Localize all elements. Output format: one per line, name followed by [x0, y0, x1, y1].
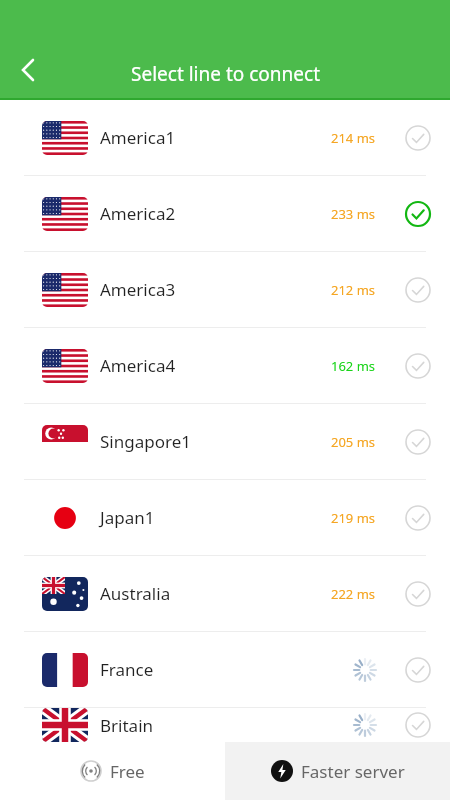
- staticText: America2: [100, 202, 331, 225]
- button[interactable]: Select Japan1: [398, 498, 438, 538]
- button[interactable]: America4: [0, 328, 450, 403]
- staticText: 162 ms: [331, 357, 376, 375]
- button[interactable]: Faster server: [225, 742, 450, 800]
- button[interactable]: America1: [0, 100, 450, 175]
- button[interactable]: Back: [0, 44, 56, 100]
- button[interactable]: Britain: [0, 708, 450, 742]
- button[interactable]: Select Britain: [398, 708, 438, 742]
- staticText: Japan1: [100, 506, 331, 529]
- staticText: 219 ms: [331, 509, 376, 527]
- staticText: Select line to connect: [131, 61, 320, 87]
- staticText: Britain: [100, 714, 354, 737]
- button[interactable]: Free: [0, 742, 225, 800]
- staticText: Faster server: [301, 760, 405, 783]
- button[interactable]: France: [0, 632, 450, 707]
- button[interactable]: Select America4: [398, 346, 438, 386]
- staticText: Singapore1: [100, 430, 331, 453]
- button[interactable]: Select France: [398, 650, 438, 690]
- button[interactable]: Select America3: [398, 270, 438, 310]
- staticText: America1: [100, 126, 331, 149]
- staticText: America3: [100, 278, 331, 301]
- staticText: 212 ms: [331, 281, 376, 299]
- button[interactable]: Singapore1: [0, 404, 450, 479]
- button[interactable]: Selected: [398, 194, 438, 234]
- staticText: France: [100, 658, 354, 681]
- button[interactable]: America3: [0, 252, 450, 327]
- button[interactable]: Australia: [0, 556, 450, 631]
- staticText: 214 ms: [331, 129, 376, 147]
- staticText: 222 ms: [331, 585, 376, 603]
- button[interactable]: Select Australia: [398, 574, 438, 614]
- button[interactable]: Select Singapore1: [398, 422, 438, 462]
- button[interactable]: America2: [0, 176, 450, 251]
- staticText: Free: [110, 760, 145, 783]
- staticText: 205 ms: [331, 433, 376, 451]
- button[interactable]: Select America1: [398, 118, 438, 158]
- staticText: America4: [100, 354, 331, 377]
- button[interactable]: Japan1: [0, 480, 450, 555]
- staticText: Australia: [100, 582, 331, 605]
- staticText: 233 ms: [331, 205, 376, 223]
